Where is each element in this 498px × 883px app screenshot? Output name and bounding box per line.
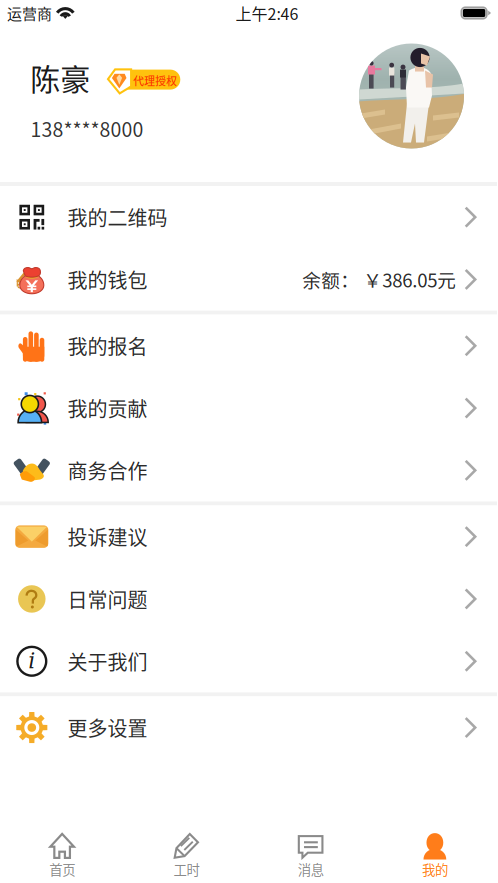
staticText: 运营商 xyxy=(7,2,52,24)
button[interactable]: 我的钱包 xyxy=(0,248,497,311)
staticText: 我的贡献 xyxy=(68,394,148,423)
staticText: 陈豪 xyxy=(30,56,90,99)
button[interactable]: 首页 xyxy=(0,826,124,883)
staticText: 日常问题 xyxy=(68,584,148,613)
button[interactable]: 消息 xyxy=(248,826,373,883)
staticText: 投诉建议 xyxy=(68,522,148,551)
staticText: 商务合作 xyxy=(68,456,148,485)
button[interactable]: 工时 xyxy=(124,826,248,883)
button[interactable]: 我的报名 xyxy=(0,315,497,377)
staticText: 工时 xyxy=(173,859,199,879)
staticText: 消息 xyxy=(298,859,324,879)
staticText: 我的钱包 xyxy=(68,265,148,294)
button[interactable]: 日常问题 xyxy=(0,568,497,630)
button[interactable]: i xyxy=(0,630,497,692)
staticText: 首页 xyxy=(49,859,75,879)
button[interactable]: 我的二维码 xyxy=(0,186,497,248)
button[interactable]: 更多设置 xyxy=(0,696,497,759)
staticText: 更多设置 xyxy=(68,713,148,742)
staticText: 上午2:46 xyxy=(236,1,299,25)
button[interactable]: 商务合作 xyxy=(0,439,497,501)
staticText: 我的二维码 xyxy=(68,203,168,232)
staticText: 138****8000 xyxy=(30,114,143,142)
staticText: 余额： ￥386.05元 xyxy=(302,266,456,293)
staticText: 代理授权 xyxy=(133,73,177,88)
staticText: 我的报名 xyxy=(68,331,148,360)
staticText: 我的 xyxy=(422,859,448,879)
button[interactable]: 投诉建议 xyxy=(0,505,497,568)
button[interactable]: 我的 xyxy=(373,826,497,883)
staticText: 关于我们 xyxy=(68,647,148,676)
button[interactable]: 我的贡献 xyxy=(0,377,497,439)
staticText: i xyxy=(28,648,35,673)
